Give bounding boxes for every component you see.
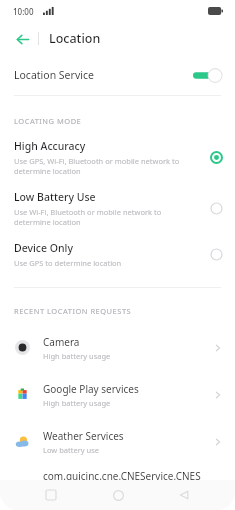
staticText: Low battery use [43,496,99,506]
staticText: LOCATING MODE [14,116,82,126]
staticText: Low battery use [43,445,99,455]
staticText: Low Battery Use [14,190,96,204]
button[interactable]: Back [169,480,199,510]
button[interactable]: Location Service [0,55,235,95]
staticText: Location Service [14,68,193,82]
button[interactable]: Home [103,480,133,510]
staticText: High battery usage [43,398,111,408]
staticText: Google Play services [43,382,139,396]
button[interactable]: Low Battery Use [0,185,235,236]
staticText: RECENT LOCATION REQUESTS [14,306,132,316]
staticText: Use Wi-Fi, Bluetooth or mobile network t… [14,207,162,227]
staticText: Location [49,30,101,47]
button[interactable]: Recents [36,480,66,510]
staticText: High battery usage [43,351,111,361]
button[interactable]: Weather Services [0,418,235,465]
staticText: Weather Services [43,429,124,443]
button[interactable]: Device Only [0,236,235,277]
staticText: Use GPS, Wi-Fi, Bluetooth or mobile netw… [14,156,180,176]
staticText: Use GPS to determine location [14,258,122,268]
staticText: Camera [43,335,80,349]
button[interactable]: Google Play services [0,371,235,418]
button[interactable]: High Accuracy [0,134,235,185]
button[interactable]: Back [8,25,36,53]
staticText: com.quicinc.cne.CNEService.CNES erviceAp… [43,469,201,494]
button[interactable]: com.quicinc.cne.CNEService.CNES erviceAp… [0,465,235,510]
staticText: High Accuracy [14,139,86,153]
button[interactable]: Camera [0,324,235,371]
staticText: 10:00 [13,6,34,17]
staticText: Device Only [14,241,73,255]
